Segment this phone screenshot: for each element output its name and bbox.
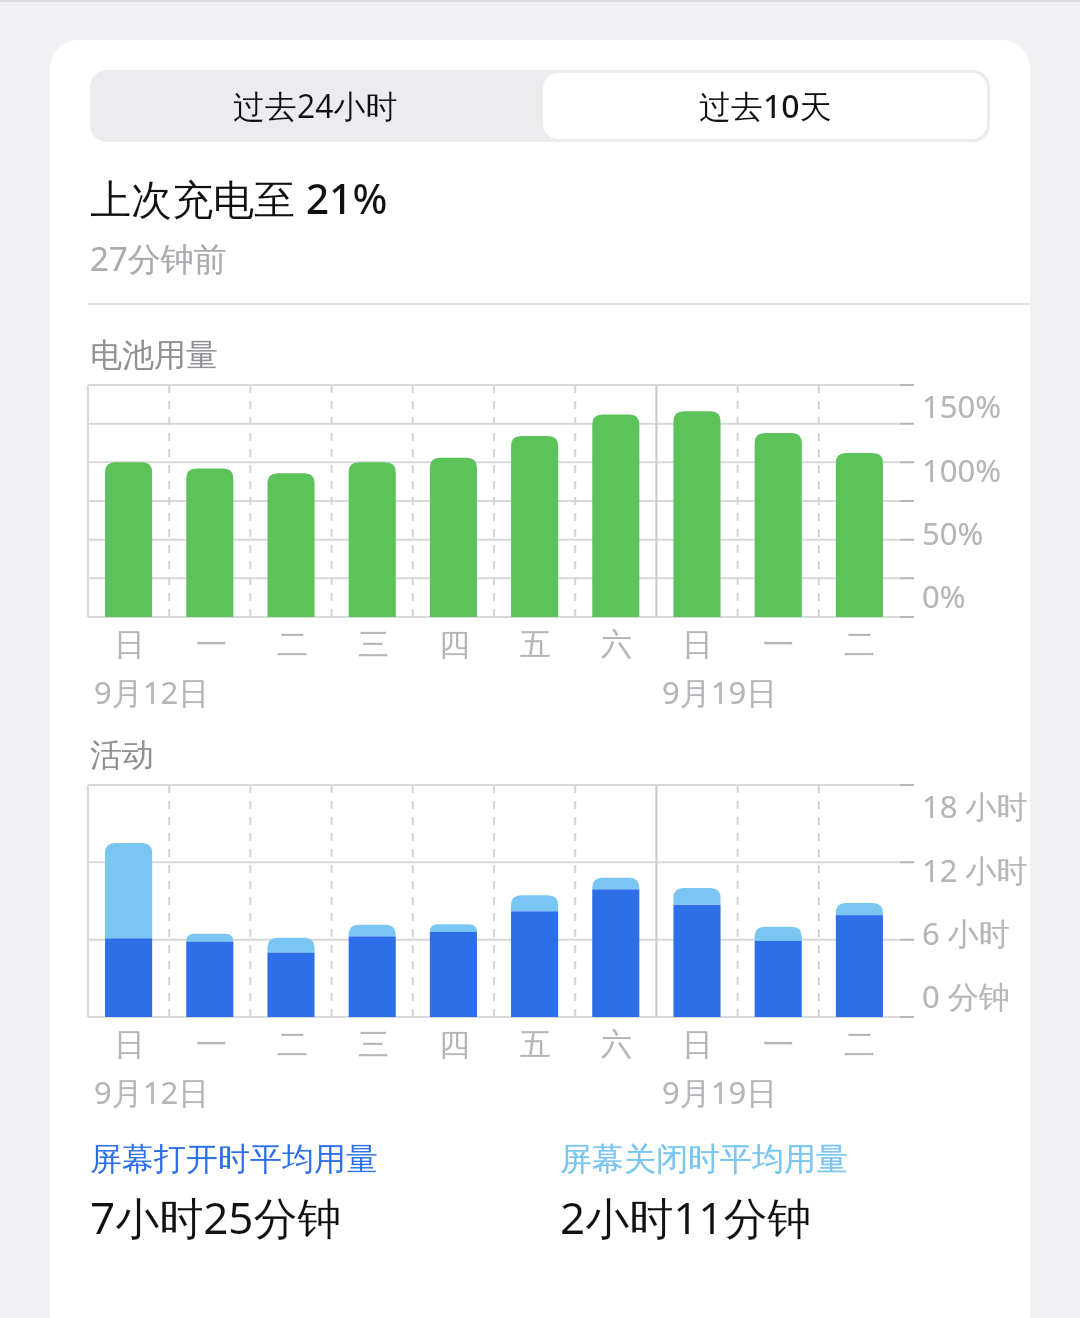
staticText: 6 小时	[922, 912, 1010, 954]
staticText: 二	[277, 625, 308, 664]
staticText: 9月12日	[94, 671, 210, 713]
staticText: 9月19日	[662, 1071, 778, 1113]
staticText: 7小时25分钟	[90, 1187, 342, 1247]
staticText: 六	[601, 1025, 632, 1064]
staticText: 一	[196, 1025, 227, 1064]
staticText: 150%	[922, 385, 1001, 427]
staticText: 屏幕打开时平均用量	[90, 1139, 378, 1179]
staticText: 三	[358, 625, 389, 664]
staticText: 9月19日	[662, 671, 778, 713]
staticText: 四	[439, 1025, 470, 1064]
staticText: 日	[114, 625, 145, 664]
staticText: 0%	[922, 575, 966, 617]
staticText: 电池用量	[90, 335, 218, 375]
staticText: 五	[520, 625, 551, 664]
staticText: 屏幕关闭时平均用量	[560, 1139, 848, 1179]
staticText: 日	[682, 625, 713, 664]
staticText: 五	[520, 1025, 551, 1064]
button[interactable]: 过去10天	[543, 73, 987, 139]
staticText: 一	[763, 1025, 794, 1064]
staticText: 三	[358, 1025, 389, 1064]
button[interactable]: 过去24小时	[90, 70, 540, 142]
staticText: 上次充电至 21%	[90, 170, 388, 226]
staticText: 过去10天	[699, 84, 832, 128]
staticText: 一	[196, 625, 227, 664]
staticText: 日	[682, 1025, 713, 1064]
staticText: 0 分钟	[922, 975, 1010, 1017]
staticText: 2小时11分钟	[560, 1187, 812, 1247]
staticText: 二	[844, 1025, 875, 1064]
staticText: 活动	[90, 735, 154, 775]
staticText: 50%	[922, 512, 984, 554]
staticText: 四	[439, 625, 470, 664]
staticText: 100%	[922, 449, 1001, 491]
staticText: 过去24小时	[233, 84, 398, 128]
staticText: 二	[277, 1025, 308, 1064]
other: Battery usage chart	[50, 385, 1030, 713]
button[interactable]: 屏幕关闭时平均用量	[560, 1139, 1030, 1247]
staticText: 27分钟前	[90, 236, 227, 281]
staticText: 12 小时	[922, 849, 1028, 891]
other: Activity chart	[50, 785, 1030, 1113]
staticText: 日	[114, 1025, 145, 1064]
button[interactable]: 屏幕打开时平均用量	[90, 1139, 560, 1247]
staticText: 9月12日	[94, 1071, 210, 1113]
staticText: 二	[844, 625, 875, 664]
staticText: 一	[763, 625, 794, 664]
staticText: 六	[601, 625, 632, 664]
staticText: 18 小时	[922, 785, 1028, 827]
